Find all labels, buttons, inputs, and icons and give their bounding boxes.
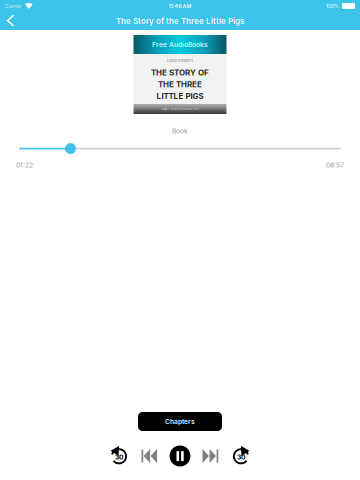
staticText: 01:22 xyxy=(16,161,33,169)
staticText: 30 xyxy=(237,453,245,461)
button[interactable]: Skip forward 30 seconds xyxy=(226,445,256,467)
staticText: 11:46 AM xyxy=(168,3,191,9)
button[interactable]: Next track xyxy=(195,445,226,467)
button[interactable]: Previous track xyxy=(134,445,165,467)
staticText: 08:57 xyxy=(326,161,344,169)
staticText: Leslie Brooke's xyxy=(167,58,193,63)
button[interactable]: Chapters xyxy=(138,412,222,431)
button[interactable]: Skip back 30 seconds xyxy=(104,445,134,467)
staticText: Carrier xyxy=(5,3,22,9)
staticText: THE THREE xyxy=(158,79,202,89)
staticText: Classic Audiobooks For You xyxy=(160,107,199,111)
staticText: Free AudioBooks xyxy=(152,40,208,49)
staticText: LITTLE PIGS xyxy=(156,91,203,101)
staticText: 30 xyxy=(115,453,123,461)
button[interactable]: Pause xyxy=(165,445,195,467)
staticText: Book xyxy=(172,127,188,135)
button[interactable]: Back xyxy=(0,12,28,30)
staticText: THE STORY OF xyxy=(151,68,209,77)
staticText: 100% xyxy=(326,3,339,9)
staticText: Chapters xyxy=(165,417,195,426)
staticText: The Story of the Three Little Pigs xyxy=(116,16,244,26)
